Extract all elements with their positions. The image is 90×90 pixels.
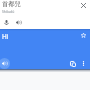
button[interactable]: Speak [1, 17, 11, 27]
staticText: Hi [2, 32, 9, 41]
button[interactable]: Listen to source text [13, 17, 23, 27]
button[interactable]: Listen to translation [0, 58, 10, 69]
button[interactable]: Copy translation [68, 59, 77, 68]
button[interactable]: Close [77, 0, 89, 11]
button[interactable]: Save translation [77, 29, 89, 41]
staticText: Shǒudū [2, 9, 15, 14]
staticText: 首都兒 [2, 0, 21, 8]
button[interactable]: More options [79, 59, 88, 68]
